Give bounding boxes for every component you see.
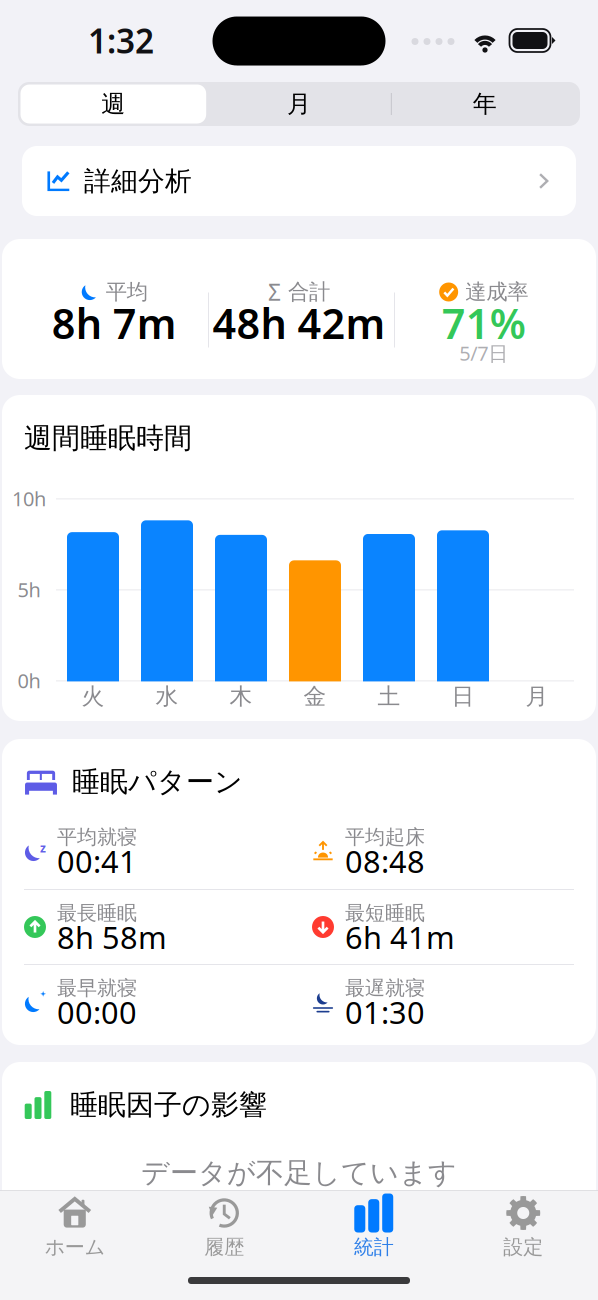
staticText: 最早就寝	[57, 976, 137, 1000]
staticText: 月	[525, 682, 548, 710]
staticText: 48h 42m	[212, 296, 385, 350]
staticText: 年	[473, 89, 497, 119]
button[interactable]: 年	[392, 84, 577, 123]
button[interactable]: 統計	[299, 1191, 448, 1261]
staticText: データが不足しています	[141, 1156, 457, 1190]
staticText: 睡眠因子の影響	[70, 1088, 267, 1122]
staticText: 土	[377, 682, 400, 710]
staticText: 月	[287, 89, 311, 119]
staticText: 01:30	[345, 992, 425, 1032]
staticText: 水	[155, 682, 178, 710]
staticText: 設定	[503, 1235, 543, 1259]
staticText: 週間睡眠時間	[24, 421, 192, 455]
staticText: 金	[303, 682, 326, 710]
staticText: 08:48	[345, 841, 425, 881]
staticText: 週	[101, 89, 125, 119]
staticText: 5h	[17, 576, 40, 603]
button[interactable]: ホーム	[0, 1191, 149, 1261]
staticText: 5/7日	[459, 340, 508, 366]
staticText: 00:41	[57, 841, 137, 881]
staticText: 0h	[17, 667, 40, 694]
staticText: 履歴	[204, 1235, 244, 1259]
staticText: 8h 58m	[57, 917, 167, 957]
staticText: 達成率	[465, 279, 528, 305]
button[interactable]: 月	[206, 84, 392, 123]
staticText: ホーム	[45, 1235, 105, 1259]
staticText: 最遅就寝	[345, 976, 425, 1000]
staticText: 木	[229, 682, 252, 710]
button[interactable]: 週	[20, 84, 206, 123]
staticText: 火	[81, 682, 104, 710]
staticText: 日	[451, 682, 474, 710]
staticText: 8h 7m	[52, 296, 177, 350]
staticText: 睡眠パターン	[72, 765, 243, 799]
staticText: 統計	[354, 1235, 394, 1259]
staticText: 合計	[288, 279, 330, 305]
button[interactable]: 設定	[448, 1191, 598, 1261]
staticText: 最長睡眠	[57, 901, 137, 925]
staticText: 00:00	[57, 992, 137, 1032]
staticText: 71%	[442, 296, 526, 350]
staticText: 1:32	[88, 18, 154, 63]
button[interactable]: 詳細分析	[22, 146, 576, 216]
staticText: Σ	[268, 277, 281, 307]
staticText: 6h 41m	[345, 917, 455, 957]
staticText: 10h	[12, 485, 46, 512]
staticText: 平均就寝	[57, 825, 137, 849]
staticText: 詳細分析	[84, 165, 192, 197]
staticText: 平均	[106, 279, 148, 305]
staticText: 平均起床	[345, 825, 425, 849]
staticText: 最短睡眠	[345, 901, 425, 925]
button[interactable]: 履歴	[149, 1191, 299, 1261]
staticText: z	[40, 840, 46, 856]
